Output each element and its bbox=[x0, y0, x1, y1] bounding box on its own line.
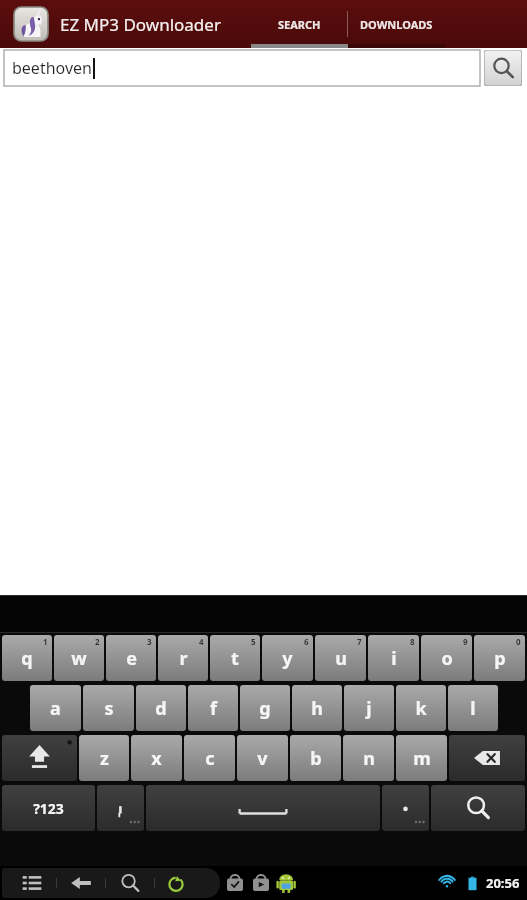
button[interactable]: j bbox=[344, 685, 394, 731]
button[interactable]: b bbox=[290, 735, 341, 781]
staticText: w bbox=[71, 646, 87, 671]
button[interactable]: Rotate screen bbox=[155, 868, 197, 898]
staticText: b bbox=[310, 746, 322, 771]
staticText: j bbox=[366, 696, 372, 721]
button[interactable]: v bbox=[237, 735, 288, 781]
staticText: 1 bbox=[43, 636, 48, 647]
button[interactable]: Comma bbox=[97, 785, 144, 831]
staticText: u bbox=[335, 646, 347, 671]
button[interactable]: Search bbox=[431, 785, 525, 831]
staticText: l bbox=[470, 696, 476, 721]
button[interactable]: 1 bbox=[2, 635, 52, 681]
button[interactable]: Shift bbox=[2, 735, 77, 781]
staticText: h bbox=[311, 696, 323, 721]
staticText: d bbox=[155, 696, 167, 721]
button[interactable]: Recent apps bbox=[8, 868, 56, 898]
staticText: 8 bbox=[410, 636, 415, 647]
button[interactable]: f bbox=[188, 685, 238, 731]
button[interactable]: g bbox=[240, 685, 290, 731]
staticText: g bbox=[259, 696, 271, 721]
staticText: n bbox=[363, 746, 375, 771]
staticText: beethoven bbox=[12, 57, 92, 79]
button[interactable]: 9 bbox=[421, 635, 472, 681]
staticText: v bbox=[257, 746, 268, 771]
staticText: 5 bbox=[251, 636, 256, 647]
button[interactable]: 7 bbox=[315, 635, 366, 681]
staticText: 4 bbox=[199, 636, 204, 647]
button[interactable]: a bbox=[30, 685, 81, 731]
button[interactable]: Period bbox=[382, 785, 429, 831]
staticText: y bbox=[282, 646, 293, 671]
staticText: i bbox=[391, 646, 397, 671]
button[interactable]: 3 bbox=[106, 635, 156, 681]
staticText: o bbox=[441, 646, 453, 671]
staticText: 7 bbox=[357, 636, 362, 647]
staticText: f bbox=[210, 696, 217, 721]
staticText: EZ MP3 Downloader bbox=[60, 13, 221, 36]
button[interactable]: z bbox=[79, 735, 129, 781]
staticText: 20:56 bbox=[486, 874, 520, 892]
button[interactable]: 0 bbox=[474, 635, 525, 681]
staticText: 2 bbox=[95, 636, 100, 647]
button[interactable]: Search bbox=[106, 868, 154, 898]
staticText: 3 bbox=[147, 636, 152, 647]
staticText: DOWNLOADS bbox=[360, 17, 433, 32]
button[interactable]: 6 bbox=[262, 635, 313, 681]
button[interactable]: 2 bbox=[54, 635, 104, 681]
button[interactable]: s bbox=[83, 685, 134, 731]
staticText: a bbox=[50, 696, 61, 721]
button[interactable]: beethoven bbox=[4, 50, 480, 86]
button[interactable]: 5 bbox=[210, 635, 260, 681]
button[interactable]: Space bbox=[146, 785, 380, 831]
button[interactable]: h bbox=[292, 685, 342, 731]
staticText: ?123 bbox=[33, 799, 64, 818]
button[interactable]: Backspace bbox=[449, 735, 525, 781]
button[interactable]: Search bbox=[484, 50, 522, 86]
button[interactable]: 4 bbox=[158, 635, 208, 681]
staticText: x bbox=[151, 746, 162, 771]
staticText: r bbox=[179, 646, 188, 671]
staticText: s bbox=[104, 696, 114, 721]
button[interactable]: 8 bbox=[368, 635, 419, 681]
staticText: e bbox=[126, 646, 137, 671]
staticText: q bbox=[21, 646, 33, 671]
button[interactable]: n bbox=[343, 735, 394, 781]
button[interactable]: SEARCH bbox=[251, 0, 348, 48]
staticText: z bbox=[100, 746, 109, 771]
button[interactable]: DOWNLOADS bbox=[348, 0, 445, 48]
button[interactable]: c bbox=[184, 735, 235, 781]
staticText: t bbox=[231, 646, 239, 671]
button[interactable]: x bbox=[131, 735, 182, 781]
staticText: c bbox=[205, 746, 215, 771]
button[interactable]: d bbox=[136, 685, 186, 731]
button[interactable]: k bbox=[396, 685, 446, 731]
button[interactable]: l bbox=[448, 685, 498, 731]
button[interactable]: Back bbox=[57, 868, 105, 898]
staticText: m bbox=[413, 746, 431, 771]
staticText: 6 bbox=[304, 636, 309, 647]
button[interactable]: EZ MP3 Downloader bbox=[0, 7, 229, 41]
staticText: k bbox=[415, 696, 427, 721]
staticText: 0 bbox=[516, 636, 521, 647]
button[interactable]: ?123 bbox=[2, 785, 95, 831]
staticText: 9 bbox=[463, 636, 468, 647]
button[interactable]: m bbox=[396, 735, 447, 781]
staticText: SEARCH bbox=[278, 17, 321, 32]
staticText: p bbox=[494, 646, 506, 671]
